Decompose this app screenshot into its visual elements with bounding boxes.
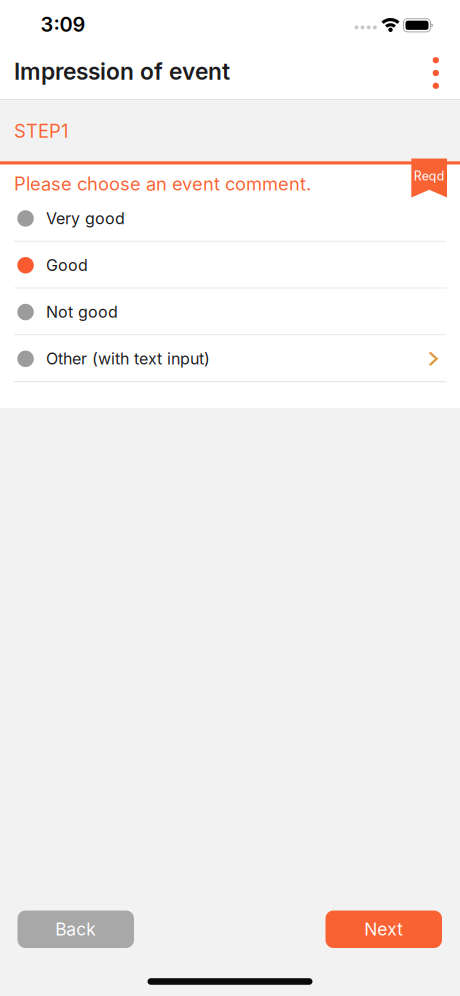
button[interactable]: Good: [0, 242, 460, 289]
button[interactable]: Next: [325, 910, 442, 948]
button[interactable]: Other (with text input): [0, 335, 460, 382]
button[interactable]: Back: [17, 910, 134, 948]
button[interactable]: More options: [415, 47, 455, 91]
staticText: Please choose an event comment.: [14, 173, 311, 195]
staticText: Very good: [46, 209, 125, 228]
button[interactable]: Not good: [0, 289, 460, 335]
staticText: Other (with text input): [46, 349, 210, 368]
staticText: Back: [55, 919, 96, 940]
staticText: Not good: [46, 302, 118, 322]
staticText: Impression of event: [14, 58, 230, 85]
staticText: STEP1: [14, 120, 68, 142]
staticText: Good: [46, 255, 88, 275]
staticText: Reqd: [414, 168, 445, 183]
staticText: 3:09: [40, 12, 85, 37]
staticText: Next: [364, 919, 403, 940]
button[interactable]: Very good: [0, 195, 460, 242]
